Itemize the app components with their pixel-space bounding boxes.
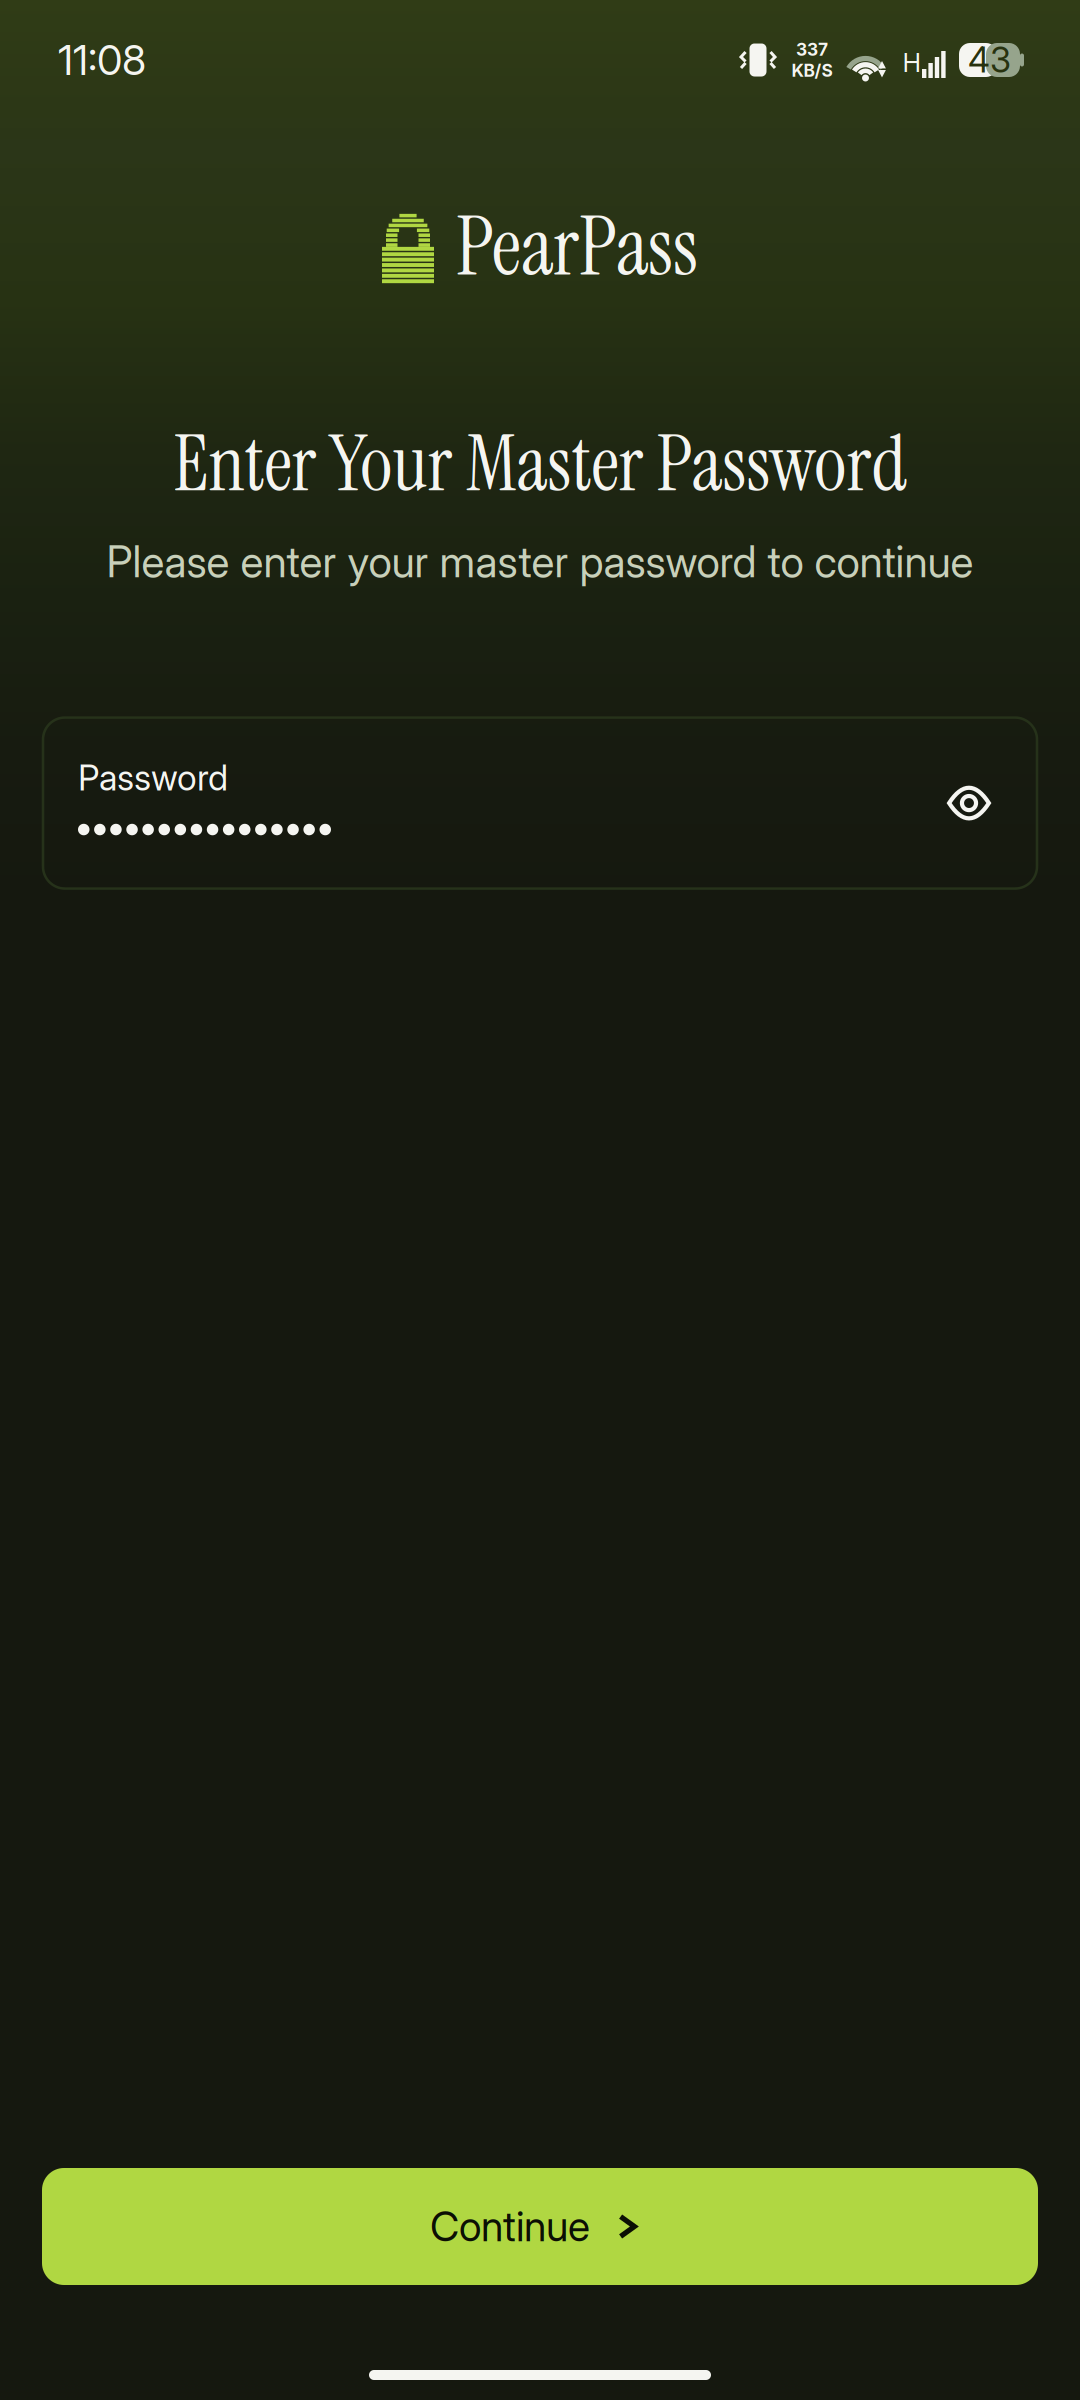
- staticText: 337: [796, 39, 828, 60]
- button[interactable]: Show password: [933, 774, 1005, 832]
- staticText: Continue: [430, 2202, 590, 2251]
- staticText: 11:08: [58, 35, 146, 85]
- staticText: Password: [78, 757, 228, 799]
- staticText: H: [902, 47, 921, 78]
- staticText: KB/S: [791, 60, 832, 81]
- staticText: Please enter your master password to con…: [106, 536, 973, 588]
- staticText: 43: [968, 39, 1011, 81]
- button[interactable]: Continue: [42, 2168, 1038, 2285]
- staticText: Enter Your Master Password: [173, 414, 906, 514]
- staticText: PearPass: [456, 194, 698, 300]
